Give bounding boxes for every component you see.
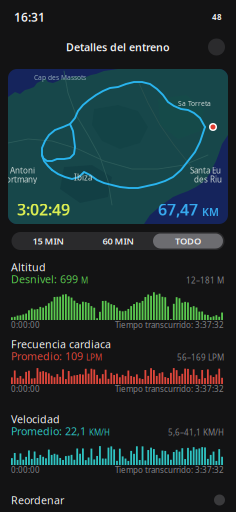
- staticText: Reordenar: [11, 493, 64, 507]
- button[interactable]: 60 MIN: [83, 233, 153, 248]
- staticText: des Riu: [194, 174, 222, 185]
- button[interactable]: Reordenar: [0, 488, 236, 512]
- staticText: Frecuencia cardiaca: [11, 337, 111, 351]
- staticText: Tiempo transcurrido: 3:37:32: [115, 465, 224, 475]
- staticText: TODO: [175, 235, 201, 247]
- button[interactable]: Cerrar: [208, 38, 225, 55]
- staticText: LPM: [86, 352, 102, 363]
- button[interactable]: TODO: [153, 233, 223, 248]
- staticText: Promedio: 22,1: [11, 424, 89, 438]
- staticText: 0:00:00: [11, 384, 40, 394]
- staticText: KM: [202, 205, 219, 219]
- staticText: 67,47: [158, 199, 202, 220]
- staticText: Tiempo transcurrido: 3:37:32: [115, 384, 224, 394]
- staticText: 0:00:00: [11, 465, 40, 475]
- button[interactable]: 15 MIN: [13, 233, 83, 248]
- staticText: Ibiza: [74, 172, 92, 183]
- staticText: Sa Torreta: [178, 99, 211, 108]
- staticText: Velocidad: [11, 412, 60, 426]
- staticText: M: [81, 275, 88, 286]
- staticText: 16:31: [14, 9, 45, 25]
- staticText: Detalles del entreno: [66, 40, 170, 54]
- staticText: Tiempo transcurrido: 3:37:32: [115, 320, 224, 330]
- staticText: 56–169 LPM: [177, 352, 224, 363]
- staticText: 48: [212, 12, 222, 22]
- staticText: 15 MIN: [32, 235, 63, 247]
- staticText: 60 MIN: [102, 235, 133, 247]
- staticText: 0:00:00: [11, 320, 40, 330]
- staticText: Desnivel: 699: [11, 272, 81, 286]
- staticText: 3:02:49: [17, 199, 70, 220]
- staticText: KM/H: [89, 427, 110, 438]
- staticText: Altitud: [11, 260, 46, 274]
- staticText: 12–181 M: [186, 275, 224, 286]
- staticText: Santa Eu: [190, 165, 221, 176]
- staticText: Antoni: [10, 165, 35, 176]
- staticText: 5,6–41,1 KM/H: [168, 427, 224, 438]
- staticText: Cap des Massots: [34, 73, 86, 82]
- staticText: ortmany: [6, 174, 37, 185]
- staticText: Promedio: 109: [11, 349, 86, 363]
